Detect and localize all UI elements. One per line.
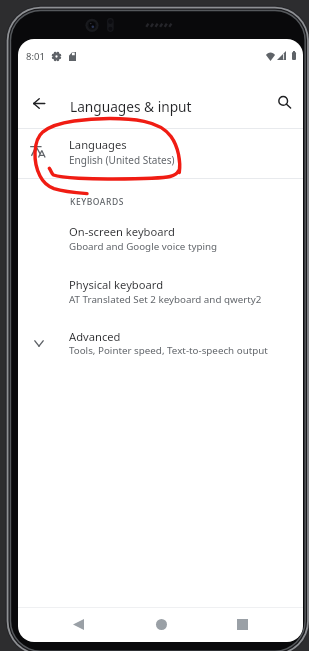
staticText: KEYBOARDS	[70, 196, 124, 208]
staticText: On-screen keyboard	[69, 224, 175, 239]
staticText: Advanced	[69, 329, 121, 344]
button[interactable]: Recent apps	[229, 611, 255, 637]
button[interactable]: Search	[274, 92, 295, 113]
staticText: AT Translated Set 2 keyboard and qwerty2	[69, 293, 262, 306]
button[interactable]: Advanced	[18, 319, 303, 372]
staticText: Languages	[69, 137, 127, 152]
staticText: Gboard and Google voice typing	[69, 240, 218, 253]
staticText: 8:01	[26, 50, 45, 63]
button[interactable]: On-screen keyboard	[18, 213, 303, 266]
button[interactable]: Physical keyboard	[18, 266, 303, 319]
staticText: Languages & input	[70, 97, 192, 116]
button[interactable]: Home	[148, 611, 174, 637]
staticText: English (United States)	[69, 153, 175, 167]
staticText: Physical keyboard	[69, 277, 164, 292]
button[interactable]: Back	[65, 611, 91, 637]
staticText: Tools, Pointer speed, Text-to-speech out…	[69, 344, 268, 357]
button[interactable]: Navigate up	[28, 93, 49, 114]
button[interactable]: Languages	[18, 128, 303, 179]
